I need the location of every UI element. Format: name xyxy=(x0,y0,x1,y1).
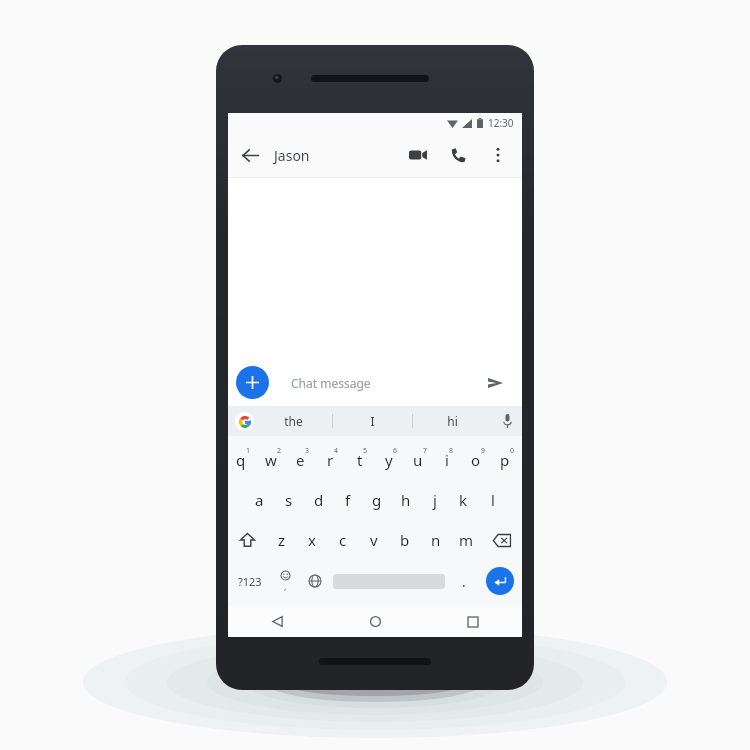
staticText: l xyxy=(491,490,495,510)
staticText: 3 xyxy=(305,446,310,456)
staticText: 5 xyxy=(363,446,368,456)
button[interactable]: d xyxy=(304,480,333,520)
button[interactable]: u xyxy=(406,440,435,480)
button[interactable]: I xyxy=(333,406,412,436)
button[interactable]: Backspace xyxy=(482,520,522,560)
button[interactable]: c xyxy=(327,520,358,560)
staticText: p xyxy=(500,450,510,470)
button[interactable]: o xyxy=(464,440,493,480)
button[interactable]: Emoji xyxy=(271,560,300,602)
button[interactable]: the xyxy=(254,406,332,436)
button[interactable]: z xyxy=(267,520,297,560)
staticText: I xyxy=(370,413,375,429)
staticText: n xyxy=(431,530,441,550)
staticText: 9 xyxy=(481,446,486,456)
button[interactable]: t xyxy=(348,440,377,480)
button[interactable]: a xyxy=(244,480,274,520)
button[interactable]: Chat message xyxy=(278,366,514,399)
button[interactable]: . xyxy=(449,560,478,602)
staticText: hi xyxy=(447,413,458,429)
button[interactable]: Send xyxy=(480,368,510,398)
button[interactable]: j xyxy=(420,480,449,520)
button[interactable]: h xyxy=(391,480,420,520)
button[interactable]: r xyxy=(318,440,348,480)
staticText: 1 xyxy=(246,446,251,456)
button[interactable]: More options xyxy=(478,135,518,175)
button[interactable]: m xyxy=(451,520,482,560)
button[interactable]: w xyxy=(258,440,288,480)
staticText: o xyxy=(471,450,481,470)
staticText: z xyxy=(278,530,286,550)
staticText: v xyxy=(370,530,378,550)
staticText: j xyxy=(433,490,437,510)
button[interactable]: i xyxy=(435,440,464,480)
button[interactable]: Back xyxy=(228,133,272,177)
button[interactable]: v xyxy=(358,520,389,560)
button[interactable]: Google xyxy=(235,412,254,431)
button[interactable]: g xyxy=(362,480,391,520)
staticText: f xyxy=(345,490,351,510)
button[interactable]: Change language xyxy=(300,560,329,602)
button[interactable]: p xyxy=(493,440,522,480)
staticText: 7 xyxy=(423,446,428,456)
staticText: Jason xyxy=(274,146,310,165)
staticText: , xyxy=(284,580,287,592)
staticText: c xyxy=(339,530,347,550)
staticText: h xyxy=(401,490,411,510)
staticText: q xyxy=(236,450,246,470)
button[interactable]: Enter xyxy=(486,567,514,595)
staticText: u xyxy=(413,450,423,470)
staticText: 6 xyxy=(393,446,398,456)
staticText: 4 xyxy=(334,446,339,456)
staticText: r xyxy=(327,450,334,470)
staticText: s xyxy=(285,490,293,510)
staticText: 8 xyxy=(449,446,454,456)
staticText: x xyxy=(308,530,316,550)
staticText: Chat message xyxy=(291,375,371,391)
button[interactable]: Call xyxy=(438,135,478,175)
button[interactable]: l xyxy=(478,480,507,520)
button[interactable]: Voice input xyxy=(492,406,522,436)
staticText: b xyxy=(400,530,410,550)
button[interactable]: k xyxy=(449,480,478,520)
staticText: g xyxy=(372,490,382,510)
button[interactable]: q xyxy=(228,440,258,480)
staticText: w xyxy=(265,450,277,470)
staticText: 2 xyxy=(277,446,282,456)
staticText: d xyxy=(314,490,324,510)
button[interactable]: Add attachment xyxy=(236,366,269,399)
button[interactable]: x xyxy=(297,520,327,560)
button[interactable]: Shift xyxy=(228,520,267,560)
staticText: 0 xyxy=(510,446,515,456)
button[interactable]: Recent apps xyxy=(424,606,522,637)
staticText: e xyxy=(296,450,305,470)
button[interactable]: hi xyxy=(413,406,492,436)
button[interactable]: e xyxy=(288,440,318,480)
button[interactable]: n xyxy=(420,520,451,560)
staticText: k xyxy=(459,490,468,510)
button[interactable]: Back xyxy=(228,606,326,637)
staticText: y xyxy=(385,450,393,470)
staticText: . xyxy=(462,572,466,591)
button[interactable]: f xyxy=(333,480,362,520)
button[interactable]: y xyxy=(377,440,406,480)
button[interactable]: b xyxy=(389,520,420,560)
staticText: a xyxy=(255,490,264,510)
button[interactable]: Home xyxy=(326,606,424,637)
staticText: 12:30 xyxy=(488,116,514,130)
button[interactable]: Video call xyxy=(398,135,438,175)
staticText: the xyxy=(284,413,303,429)
staticText: t xyxy=(357,450,363,470)
button[interactable]: ?123 xyxy=(228,560,271,602)
staticText: m xyxy=(459,530,474,550)
button[interactable]: s xyxy=(274,480,304,520)
staticText: ?123 xyxy=(238,574,262,589)
staticText: i xyxy=(445,450,449,470)
